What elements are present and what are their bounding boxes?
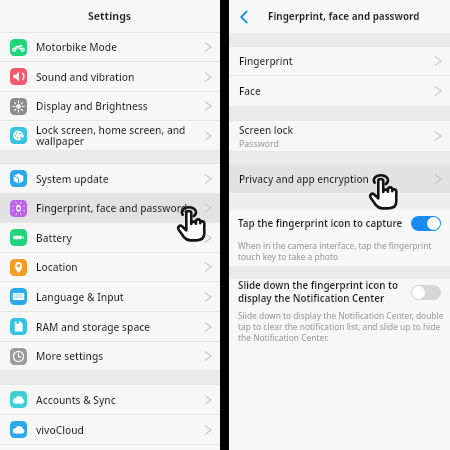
staticText: Tap the fingerprint icon to capture <box>238 217 403 230</box>
staticText: Display and Brightness <box>36 99 197 113</box>
staticText: Lock screen, home screen, and wallpaper <box>36 123 197 148</box>
button[interactable]: Slide down the fingerprint icon to displ… <box>229 279 450 305</box>
button[interactable]: Display and Brightness <box>0 92 220 120</box>
button[interactable]: Motorbike Mode <box>0 33 220 61</box>
button[interactable]: Lock screen, home screen, and wallpaper <box>0 121 220 150</box>
button[interactable]: More settings <box>0 342 220 370</box>
button[interactable]: Screen lock <box>229 121 450 151</box>
staticText: More settings <box>36 349 197 363</box>
button[interactable]: Toggle on <box>411 216 441 231</box>
staticText: vivoCloud <box>36 423 197 437</box>
staticText: Privacy and app encryption <box>239 172 369 186</box>
staticText: Location <box>36 260 197 274</box>
staticText: Battery <box>36 231 197 245</box>
staticText: When in the camera interface, tap the fi… <box>238 240 445 262</box>
staticText: Face <box>239 84 261 98</box>
button[interactable]: System update <box>0 164 220 193</box>
button[interactable]: Fingerprint <box>229 47 450 75</box>
button[interactable]: vivoCloud <box>0 415 220 444</box>
staticText: Sound and vibration <box>36 70 197 84</box>
staticText: RAM and storage space <box>36 320 197 334</box>
button[interactable]: Language & Input <box>0 282 220 311</box>
staticText: Fingerprint, face and password <box>36 201 197 215</box>
staticText: Screen lock <box>239 123 294 137</box>
staticText: Fingerprint <box>239 54 293 68</box>
button[interactable]: Privacy and app encryption <box>229 165 450 192</box>
button[interactable]: Toggle off <box>411 285 441 300</box>
button[interactable]: Face <box>229 76 450 106</box>
staticText: Settings <box>88 9 132 23</box>
button[interactable]: Sound and vibration <box>0 62 220 91</box>
staticText: Password <box>239 138 279 150</box>
button[interactable]: RAM and storage space <box>0 312 220 341</box>
staticText: Accounts & Sync <box>36 393 197 407</box>
button[interactable]: Tap the fingerprint icon to capture <box>229 210 450 237</box>
button[interactable]: Battery <box>0 223 220 252</box>
button[interactable]: Fingerprint, face and password <box>0 194 220 222</box>
staticText: Fingerprint, face and password <box>268 10 420 23</box>
button[interactable]: Accounts & Sync <box>0 385 220 414</box>
button[interactable]: Location <box>0 253 220 281</box>
staticText: Slide down to display the Notification C… <box>238 310 445 343</box>
button[interactable]: Back <box>234 7 254 27</box>
staticText: Motorbike Mode <box>36 40 197 54</box>
staticText: Language & Input <box>36 290 197 304</box>
staticText: Slide down the fingerprint icon to displ… <box>238 279 403 305</box>
staticText: System update <box>36 172 197 186</box>
